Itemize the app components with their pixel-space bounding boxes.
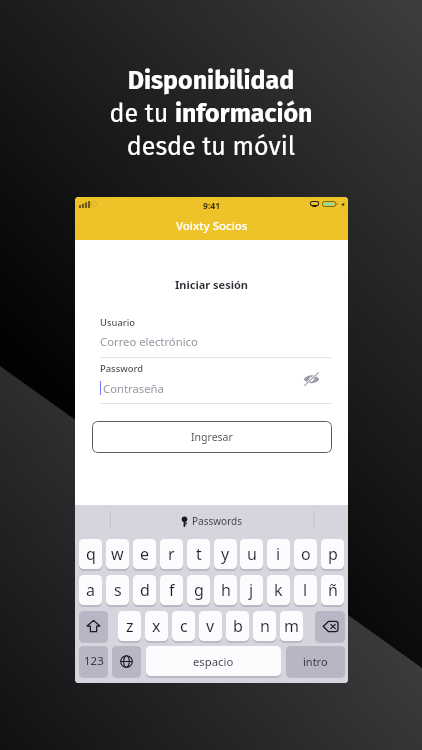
- staticText: z: [126, 615, 134, 637]
- button[interactable]: d: [133, 575, 156, 605]
- staticText: x: [152, 615, 161, 637]
- staticText: Contraseña: [103, 381, 164, 396]
- staticText: p: [328, 543, 338, 565]
- staticText: o: [301, 543, 311, 565]
- button[interactable]: z: [118, 611, 141, 641]
- staticText: h: [221, 579, 231, 601]
- staticText: Disponibilidad de tu información desde t…: [0, 66, 422, 162]
- staticText: a: [86, 579, 95, 601]
- staticText: Password: [100, 362, 144, 375]
- staticText: i: [276, 543, 281, 565]
- button[interactable]: x: [145, 611, 168, 641]
- button[interactable]: Cambiar teclado: [112, 646, 141, 676]
- staticText: Iniciar sesión: [75, 277, 348, 292]
- staticText: Voixty Socios: [176, 218, 248, 234]
- staticText: espacio: [193, 654, 234, 669]
- button[interactable]: o: [294, 539, 317, 569]
- button[interactable]: t: [187, 539, 210, 569]
- button[interactable]: r: [160, 539, 183, 569]
- button[interactable]: Ingresar: [92, 421, 332, 453]
- button[interactable]: i: [267, 539, 290, 569]
- staticText: t: [196, 543, 202, 565]
- staticText: Usuario: [100, 316, 135, 329]
- staticText: s: [114, 579, 122, 601]
- button[interactable]: n: [253, 611, 276, 641]
- button[interactable]: q: [79, 539, 102, 569]
- staticText: Passwords: [192, 514, 243, 528]
- button[interactable]: s: [106, 575, 129, 605]
- staticText: intro: [303, 654, 328, 669]
- button[interactable]: h: [214, 575, 237, 605]
- button[interactable]: e: [133, 539, 156, 569]
- staticText: v: [206, 615, 215, 637]
- staticText: u: [247, 543, 257, 565]
- staticText: c: [180, 615, 188, 637]
- staticText: n: [260, 615, 270, 637]
- staticText: g: [194, 579, 204, 601]
- button[interactable]: b: [226, 611, 249, 641]
- button[interactable]: g: [187, 575, 210, 605]
- button[interactable]: c: [172, 611, 195, 641]
- staticText: q: [86, 543, 96, 565]
- button[interactable]: p: [321, 539, 344, 569]
- button[interactable]: a: [79, 575, 102, 605]
- staticText: k: [274, 579, 283, 601]
- button[interactable]: Borrar: [315, 611, 345, 641]
- staticText: y: [221, 543, 230, 565]
- staticText: j: [249, 579, 254, 601]
- staticText: b: [233, 615, 243, 637]
- button[interactable]: 123: [79, 646, 108, 676]
- staticText: d: [140, 579, 150, 601]
- button[interactable]: Mayúsculas: [79, 611, 108, 641]
- staticText: Correo electrónico: [100, 334, 198, 349]
- button[interactable]: Mostrar contraseña: [303, 372, 320, 386]
- staticText: w: [111, 543, 124, 565]
- button[interactable]: f: [160, 575, 183, 605]
- staticText: l: [303, 579, 308, 601]
- button[interactable]: m: [280, 611, 303, 641]
- button[interactable]: intro: [286, 646, 345, 676]
- staticText: 123: [84, 653, 104, 669]
- staticText: ñ: [328, 579, 338, 601]
- button[interactable]: w: [106, 539, 129, 569]
- button[interactable]: u: [240, 539, 263, 569]
- button[interactable]: espacio: [146, 646, 281, 676]
- staticText: 9:41: [203, 200, 221, 212]
- button[interactable]: k: [267, 575, 290, 605]
- button[interactable]: y: [214, 539, 237, 569]
- button[interactable]: j: [240, 575, 263, 605]
- staticText: e: [140, 543, 150, 565]
- button[interactable]: ñ: [321, 575, 344, 605]
- staticText: f: [169, 579, 175, 601]
- staticText: m: [284, 615, 299, 637]
- staticText: Ingresar: [191, 430, 233, 444]
- staticText: r: [168, 543, 175, 565]
- button[interactable]: l: [294, 575, 317, 605]
- button[interactable]: v: [199, 611, 222, 641]
